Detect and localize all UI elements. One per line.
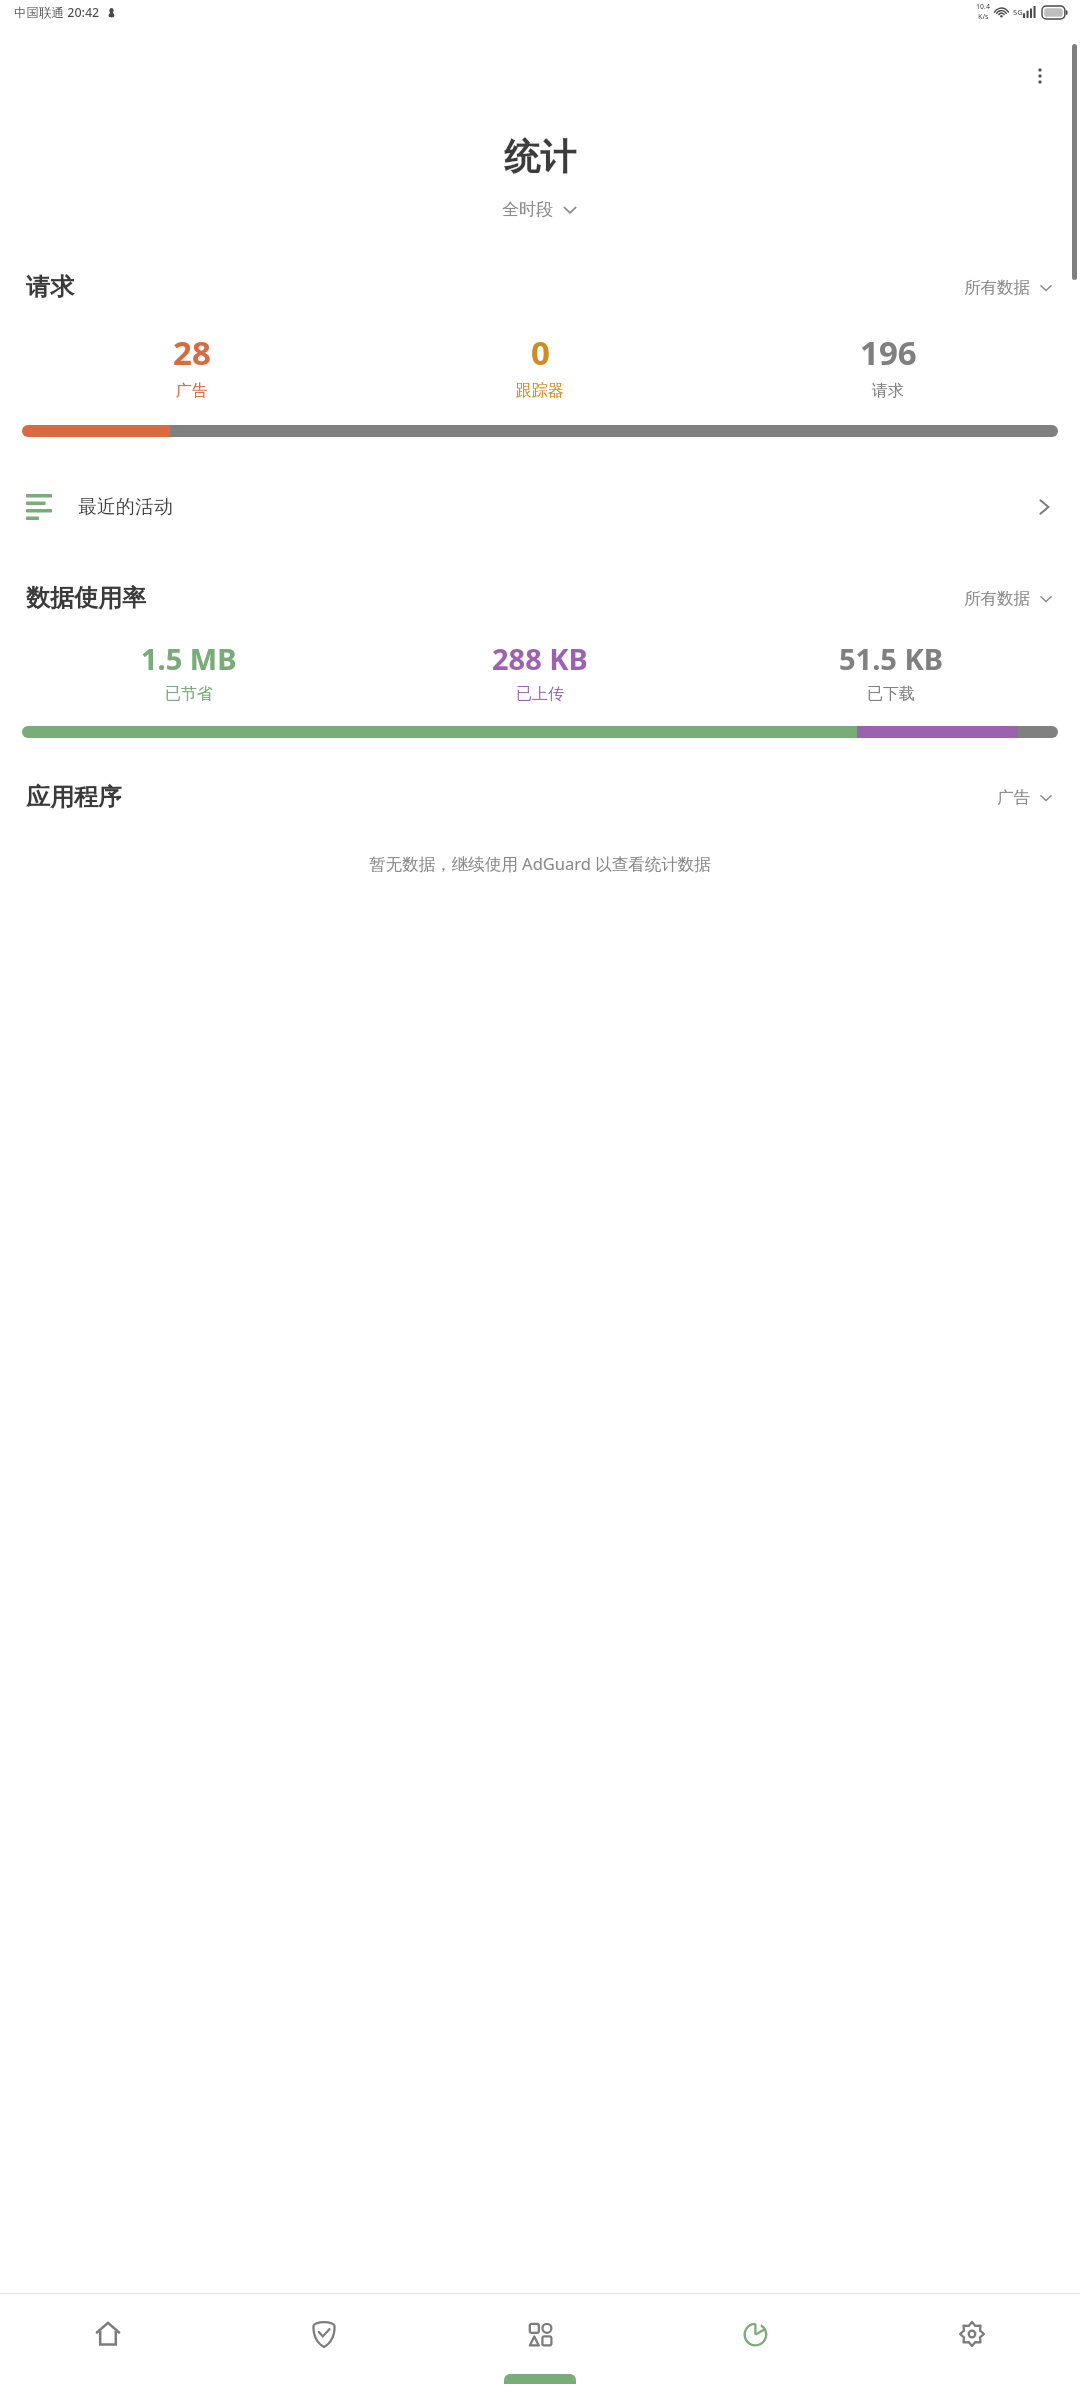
button[interactable]: 所有数据 bbox=[964, 277, 1054, 298]
button[interactable]: 288 KB bbox=[364, 639, 715, 704]
staticText: 288 KB bbox=[492, 639, 588, 678]
staticText: 统计 bbox=[0, 134, 1080, 179]
staticText: 广告 bbox=[176, 381, 208, 401]
button[interactable]: 广告 bbox=[997, 787, 1054, 808]
staticText: 所有数据 bbox=[964, 588, 1030, 609]
button[interactable]: Settings bbox=[864, 2294, 1080, 2374]
button[interactable]: Apps bbox=[432, 2294, 648, 2374]
staticText: K/s bbox=[978, 12, 989, 22]
staticText: 51.5 KB bbox=[839, 639, 943, 678]
staticText: 28 bbox=[173, 330, 211, 375]
staticText: 全时段 bbox=[502, 199, 553, 220]
staticText: 已上传 bbox=[516, 684, 564, 704]
staticText: 请求 bbox=[26, 272, 74, 302]
staticText: 196 bbox=[860, 330, 917, 375]
staticText: 数据使用率 bbox=[26, 583, 146, 613]
staticText: 请求 bbox=[872, 381, 904, 401]
button[interactable]: 所有数据 bbox=[964, 588, 1054, 609]
staticText: 已节省 bbox=[165, 684, 213, 704]
button[interactable]: More options bbox=[1016, 52, 1064, 100]
button[interactable]: 1.5 MB bbox=[14, 639, 364, 704]
button[interactable]: 51.5 KB bbox=[715, 639, 1066, 704]
staticText: 应用程序 bbox=[26, 782, 122, 812]
staticText: 中国联通 20:42 bbox=[14, 4, 100, 21]
staticText: 5G bbox=[1013, 7, 1023, 17]
button[interactable]: 28 bbox=[18, 330, 366, 401]
staticText: 所有数据 bbox=[964, 277, 1030, 298]
button[interactable]: 0 bbox=[366, 330, 714, 401]
button[interactable]: 全时段 bbox=[0, 199, 1080, 220]
staticText: 10.4 bbox=[976, 2, 990, 12]
button[interactable]: Protection bbox=[216, 2294, 432, 2374]
staticText: 暂无数据，继续使用 AdGuard 以查看统计数据 bbox=[0, 852, 1080, 875]
button[interactable]: Statistics bbox=[648, 2294, 864, 2374]
button[interactable]: Home bbox=[0, 2294, 216, 2374]
staticText: 跟踪器 bbox=[516, 381, 564, 401]
staticText: 0 bbox=[531, 330, 550, 375]
button[interactable]: 最近的活动 bbox=[0, 479, 1080, 535]
staticText: 已下载 bbox=[867, 684, 915, 704]
staticText: 广告 bbox=[997, 787, 1030, 808]
staticText: 1.5 MB bbox=[141, 639, 237, 678]
button[interactable]: 196 bbox=[714, 330, 1062, 401]
staticText: 最近的活动 bbox=[78, 495, 173, 519]
